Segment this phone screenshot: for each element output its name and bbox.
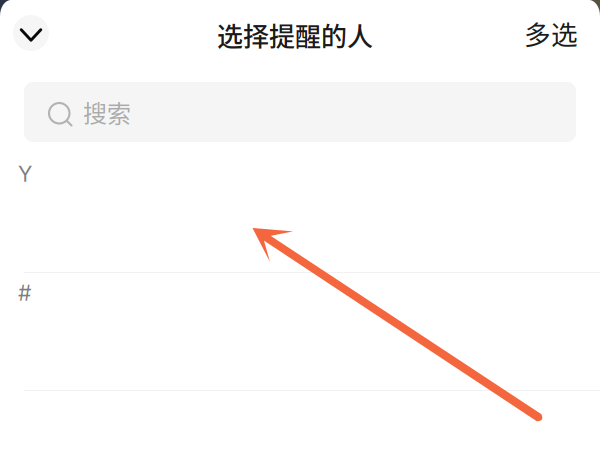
staticText: 多选 (524, 14, 578, 52)
staticText: 选择提醒的人 (217, 16, 373, 54)
staticText: # (18, 280, 31, 306)
staticText: 搜索 (83, 95, 131, 129)
button[interactable]: 搜索 (24, 82, 576, 142)
button[interactable]: 联系人 (0, 301, 600, 390)
button[interactable]: Close (13, 15, 49, 51)
button[interactable]: 多选 (524, 14, 578, 52)
staticText: Y (18, 161, 32, 187)
button[interactable]: 联系人 (0, 182, 600, 272)
